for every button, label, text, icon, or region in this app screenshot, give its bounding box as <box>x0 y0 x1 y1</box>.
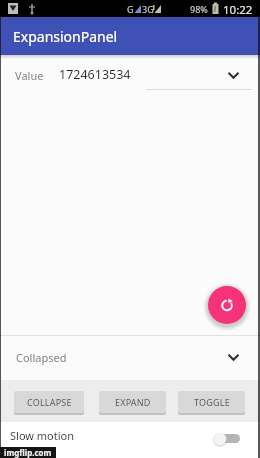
button[interactable]: EXPAND <box>99 391 166 413</box>
button[interactable]: COLLAPSE <box>14 391 84 413</box>
staticText: 1724613534 <box>59 66 131 83</box>
staticText: ExpansionPanel <box>13 27 118 46</box>
staticText: 3G <box>142 3 154 15</box>
staticText: Value <box>15 68 44 83</box>
staticText: 10:22 <box>223 2 253 18</box>
staticText: imgflip.com <box>4 447 52 458</box>
staticText: Collapsed <box>16 350 67 365</box>
staticText: EXPAND <box>115 396 151 408</box>
button[interactable]: Slow motion <box>0 422 260 458</box>
staticText: 98% <box>190 3 208 15</box>
button[interactable] <box>208 286 246 324</box>
button[interactable]: Value <box>0 56 260 90</box>
button[interactable]: TOGGLE <box>178 391 245 413</box>
button[interactable]: Collapsed <box>0 336 260 379</box>
staticText: TOGGLE <box>194 396 230 408</box>
staticText: COLLAPSE <box>27 396 72 408</box>
staticText: Slow motion <box>10 428 75 443</box>
staticText: G <box>127 3 134 15</box>
